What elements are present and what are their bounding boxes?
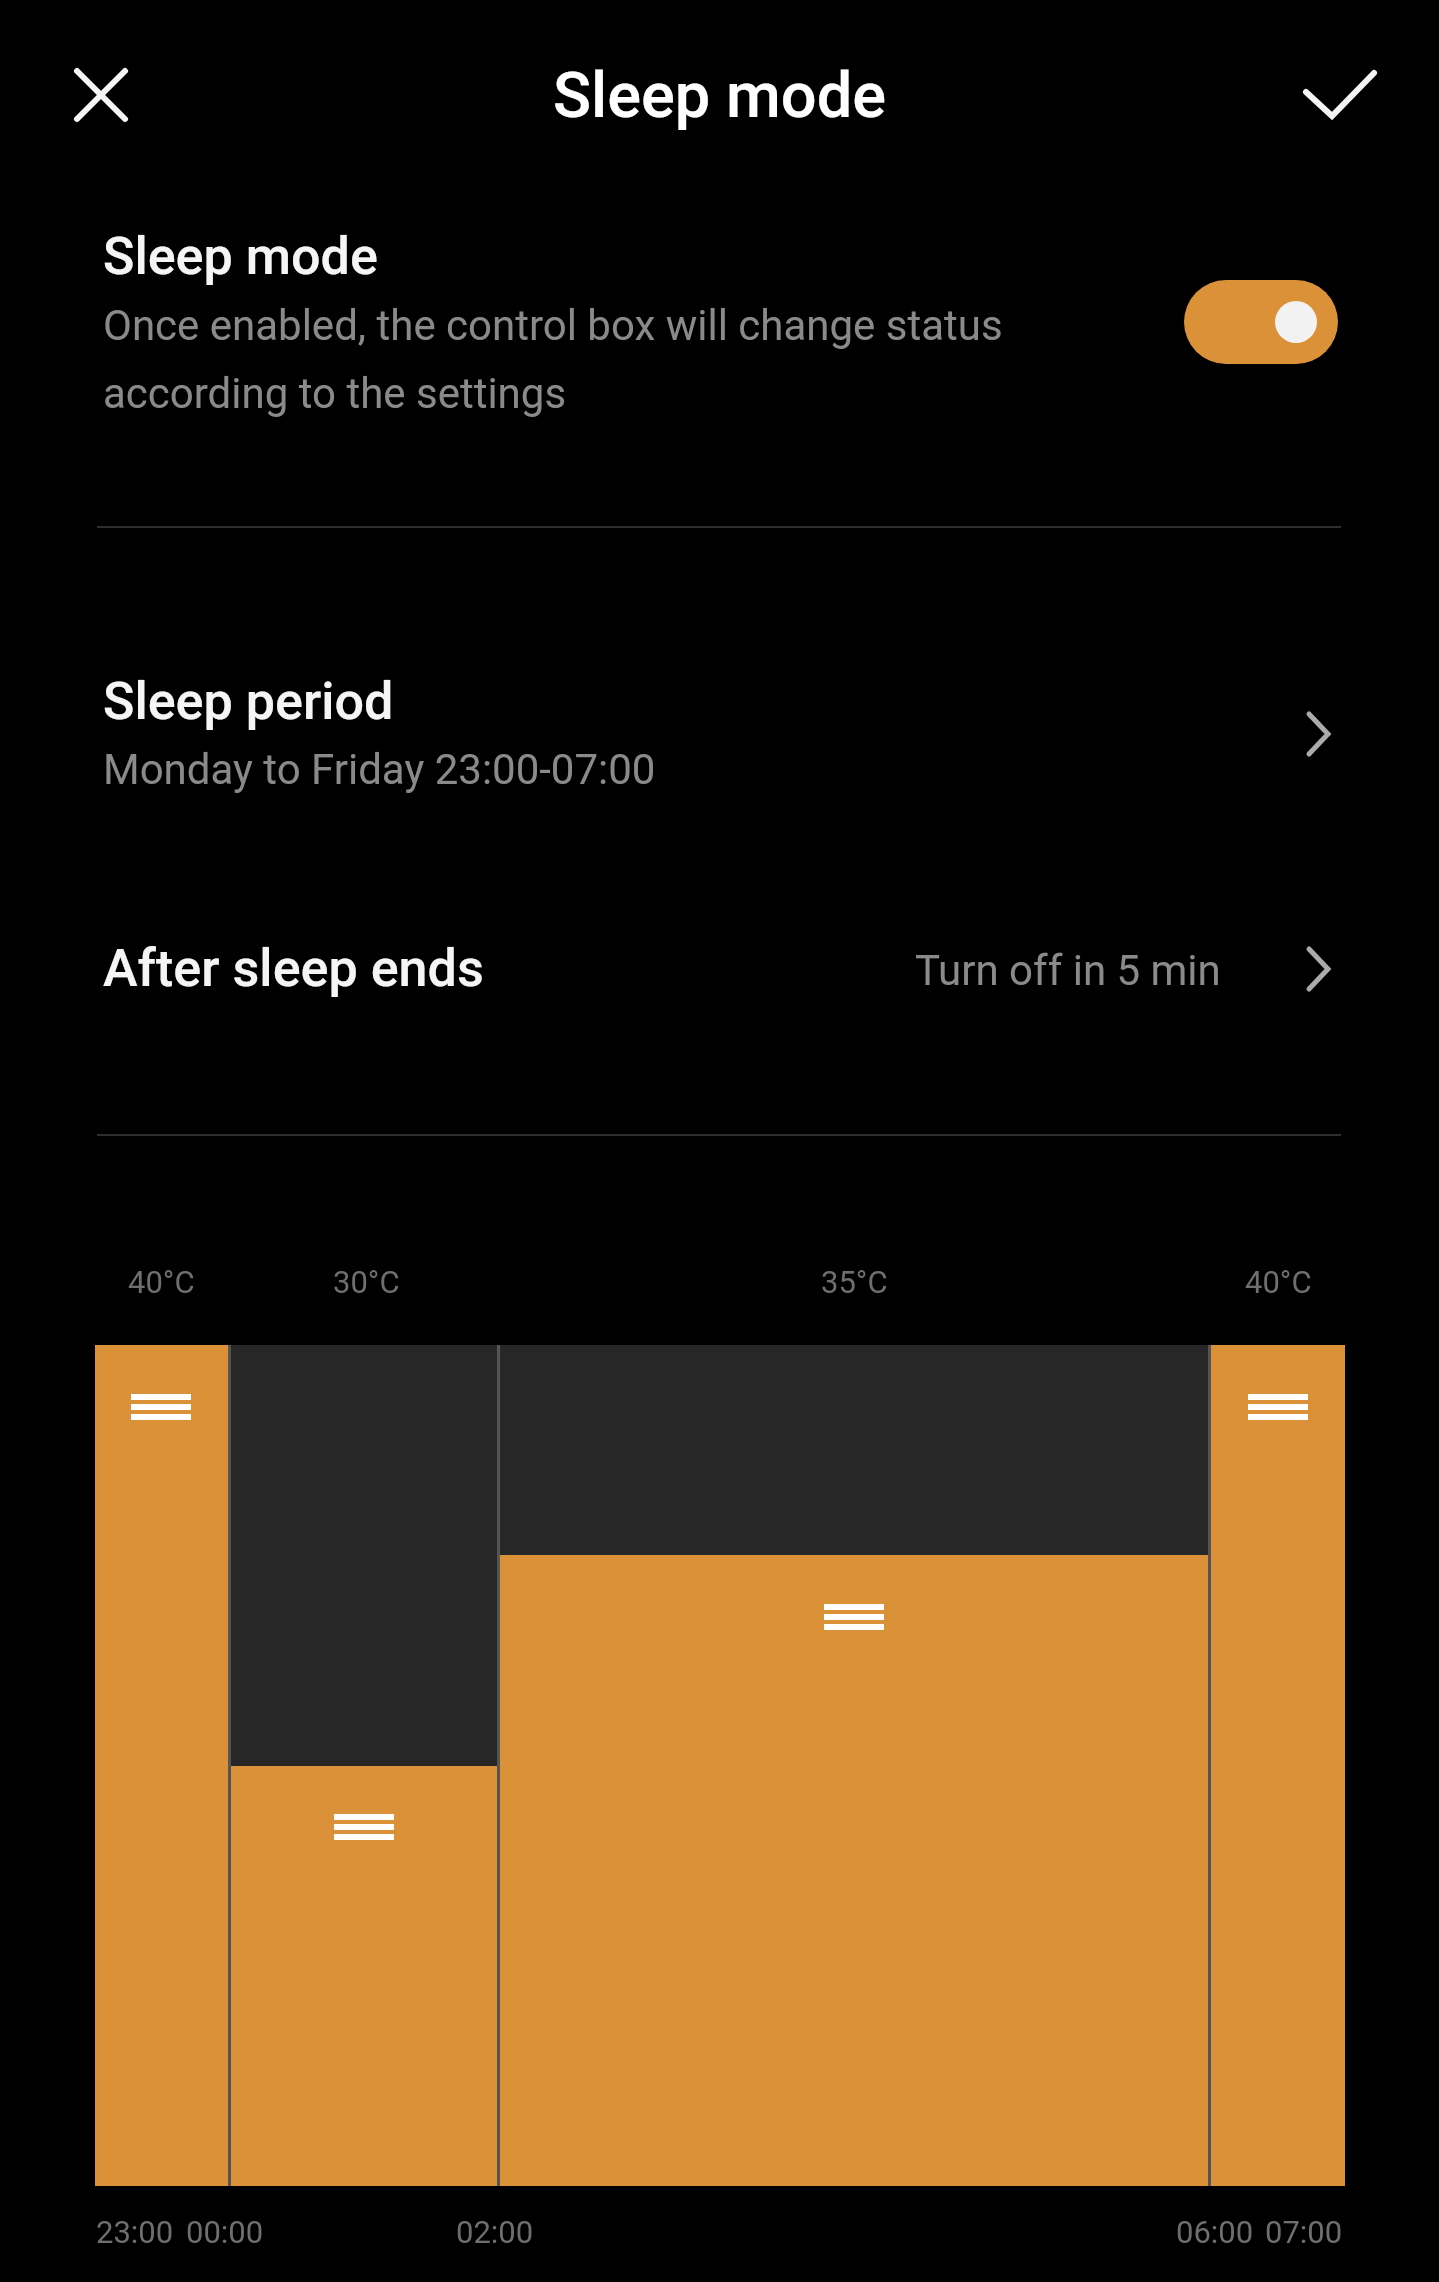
button[interactable]: Sleep period: [0, 645, 1439, 830]
button[interactable]: After sleep ends: [0, 900, 1439, 1060]
staticText: Once enabled, the control box will chang…: [103, 301, 1003, 418]
staticText: 30°C: [333, 1264, 400, 1300]
button[interactable]: [95, 1345, 228, 2186]
button[interactable]: [1184, 280, 1338, 364]
staticText: Sleep mode: [103, 226, 378, 287]
staticText: 00:00: [186, 2214, 264, 2250]
staticText: Sleep period: [103, 671, 394, 732]
button[interactable]: [1211, 1345, 1345, 2186]
staticText: Monday to Friday 23:00-07:00: [103, 745, 656, 794]
staticText: 06:00: [1176, 2214, 1254, 2250]
staticText: Turn off in 5 min: [915, 946, 1221, 995]
button[interactable]: [56, 50, 146, 140]
button[interactable]: [500, 1555, 1208, 2186]
staticText: 35°C: [821, 1264, 888, 1300]
button[interactable]: [231, 1766, 497, 2186]
staticText: 40°C: [128, 1264, 195, 1300]
staticText: After sleep ends: [103, 938, 484, 999]
button[interactable]: [1290, 50, 1390, 140]
staticText: 02:00: [456, 2214, 534, 2250]
staticText: 07:00: [1265, 2214, 1343, 2250]
staticText: 23:00: [96, 2214, 174, 2250]
staticText: Sleep mode: [553, 59, 887, 133]
staticText: 40°C: [1245, 1264, 1312, 1300]
